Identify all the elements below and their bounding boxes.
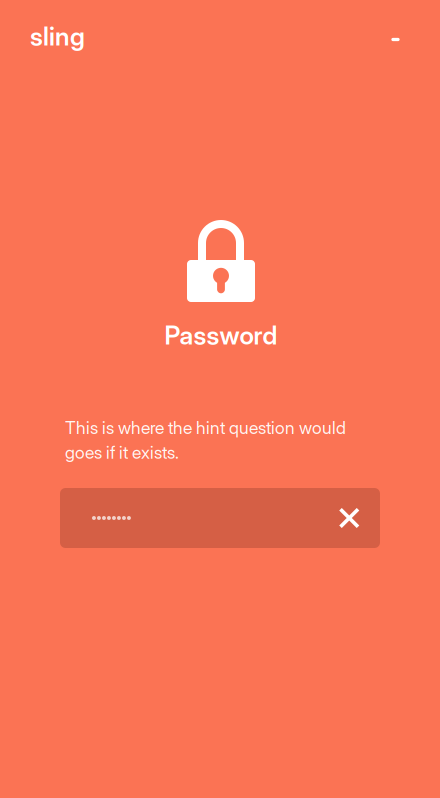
button[interactable]: Menu bbox=[373, 17, 417, 61]
staticText: sling bbox=[30, 21, 85, 52]
staticText: Password bbox=[164, 320, 277, 351]
button[interactable] bbox=[60, 488, 380, 548]
staticText: This is where the hint question would go… bbox=[65, 417, 346, 463]
